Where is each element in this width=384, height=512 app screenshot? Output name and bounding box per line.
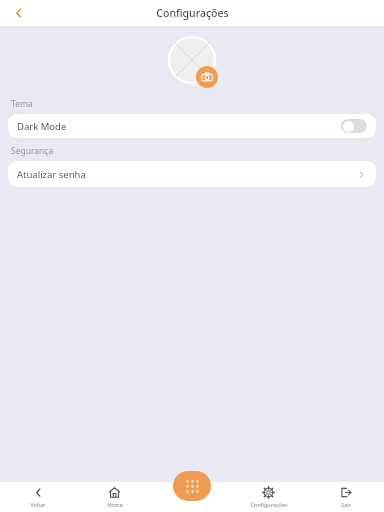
button[interactable]: Alterar foto de perfil: [168, 36, 216, 84]
button[interactable]: Atualizar senha: [8, 161, 376, 187]
staticText: Sair: [341, 501, 351, 508]
staticText: Atualizar senha: [17, 168, 86, 181]
button[interactable]: Dark Mode: [8, 114, 376, 138]
button[interactable]: Voltar: [0, 482, 76, 512]
staticText: Home: [107, 501, 123, 508]
staticText: Dark Mode: [17, 120, 67, 133]
button[interactable]: Tirar foto: [196, 66, 218, 88]
staticText: Tema: [11, 98, 33, 110]
staticText: Configurações: [250, 501, 288, 508]
button[interactable]: Home: [76, 482, 153, 512]
button[interactable]: Voltar: [6, 0, 32, 26]
button[interactable]: Dark Mode: [341, 119, 367, 133]
button[interactable]: Sair: [307, 482, 384, 512]
button[interactable]: Menu: [173, 471, 211, 501]
staticText: Voltar: [30, 501, 46, 508]
staticText: Segurança: [11, 145, 54, 157]
button[interactable]: Configurações: [230, 482, 307, 512]
staticText: Configurações: [156, 6, 229, 20]
